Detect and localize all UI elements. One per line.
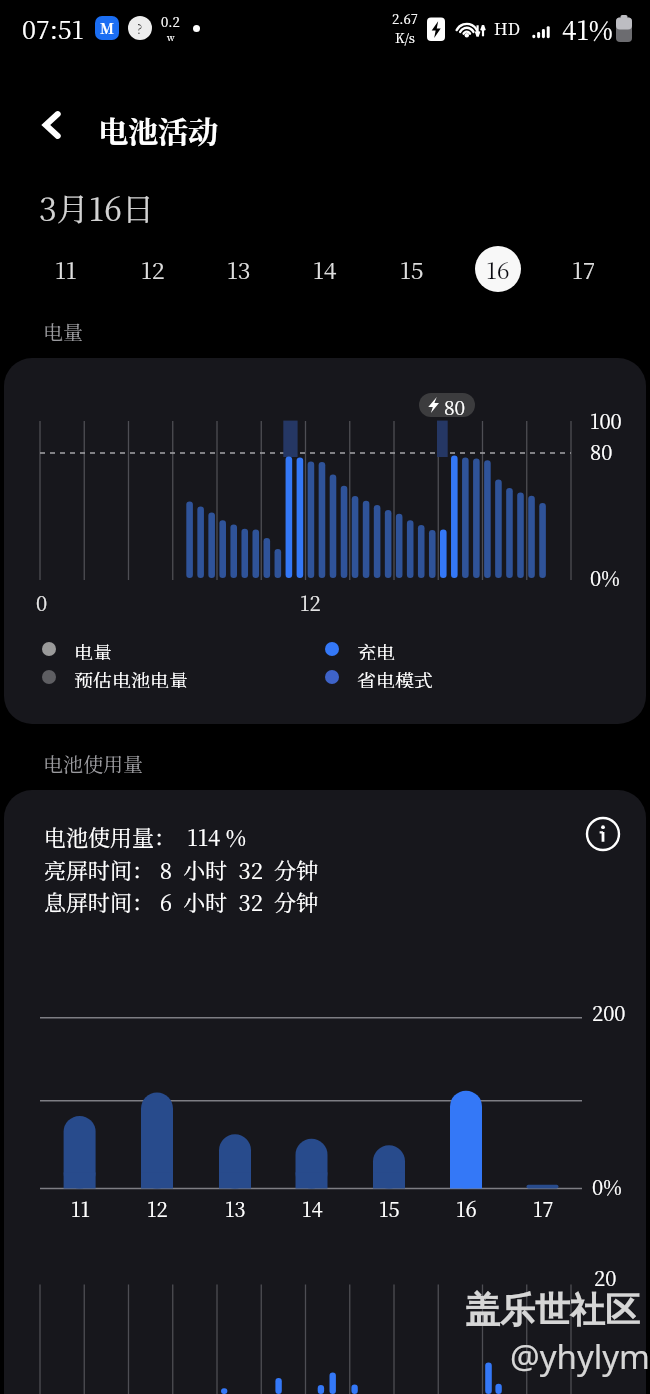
staticText: 20 bbox=[594, 1263, 617, 1291]
button[interactable]: 预估电池电量 bbox=[42, 666, 189, 688]
staticText: 电量 bbox=[74, 638, 113, 660]
button[interactable]: 16 bbox=[475, 246, 521, 292]
staticText: 电量 bbox=[43, 317, 83, 346]
staticText: 2.67 bbox=[392, 9, 418, 28]
staticText: 电池活动 bbox=[98, 108, 218, 151]
staticText: 0% bbox=[592, 1172, 622, 1200]
staticText: 17 bbox=[533, 1194, 554, 1222]
button[interactable]: 省电模式 bbox=[325, 666, 434, 688]
staticText: 12 bbox=[300, 588, 321, 616]
button[interactable]: 电量 bbox=[42, 638, 113, 660]
staticText: @yhylym bbox=[510, 1334, 650, 1379]
staticText: 息屏时间： 6 小时 32 分钟 bbox=[44, 886, 319, 918]
button[interactable]: 12 bbox=[130, 246, 176, 292]
button[interactable]: 17 bbox=[561, 246, 607, 292]
staticText: w bbox=[167, 31, 175, 44]
staticText: 0 bbox=[36, 588, 48, 616]
staticText: 16 bbox=[456, 1194, 477, 1222]
staticText: 12 bbox=[147, 1194, 168, 1222]
button[interactable]: Back bbox=[28, 101, 76, 149]
button[interactable]: 14 bbox=[302, 246, 348, 292]
staticText: 电池使用量 bbox=[43, 749, 143, 778]
staticText: 11 bbox=[55, 253, 77, 286]
staticText: M bbox=[100, 18, 115, 38]
staticText: 07:51 bbox=[22, 10, 84, 46]
staticText: HD bbox=[494, 17, 520, 40]
staticText: 200 bbox=[592, 998, 626, 1026]
staticText: 省电模式 bbox=[357, 666, 434, 688]
button[interactable]: 15 bbox=[389, 246, 435, 292]
staticText: ? bbox=[137, 20, 143, 37]
staticText: 14 bbox=[313, 253, 337, 286]
staticText: 15 bbox=[400, 253, 424, 286]
staticText: 16 bbox=[486, 253, 510, 286]
staticText: 13 bbox=[225, 1194, 246, 1222]
staticText: 13 bbox=[227, 253, 251, 286]
staticText: 15 bbox=[379, 1194, 400, 1222]
staticText: 盖乐世社区 bbox=[465, 1288, 640, 1332]
staticText: 电池使用量： 114 % bbox=[44, 821, 247, 853]
button[interactable]: 充电 bbox=[325, 638, 396, 660]
staticText: 80 bbox=[590, 437, 613, 465]
staticText: 亮屏时间： 8 小时 32 分钟 bbox=[44, 854, 319, 886]
staticText: 11 bbox=[71, 1194, 90, 1222]
staticText: 0% bbox=[590, 563, 620, 591]
button[interactable]: 13 bbox=[216, 246, 262, 292]
staticText: 80 bbox=[444, 393, 466, 417]
button[interactable]: 11 bbox=[43, 246, 89, 292]
staticText: 41% bbox=[562, 10, 613, 47]
staticText: 0.2 bbox=[161, 12, 180, 31]
staticText: K/s bbox=[395, 28, 415, 47]
staticText: 17 bbox=[572, 253, 596, 286]
staticText: 预估电池电量 bbox=[74, 666, 189, 688]
staticText: 100 bbox=[590, 406, 622, 434]
staticText: 12 bbox=[141, 253, 165, 286]
staticText: 3月16日 bbox=[39, 184, 154, 230]
staticText: 14 bbox=[302, 1194, 323, 1222]
button[interactable]: Info bbox=[583, 814, 623, 854]
staticText: 充电 bbox=[357, 638, 396, 660]
